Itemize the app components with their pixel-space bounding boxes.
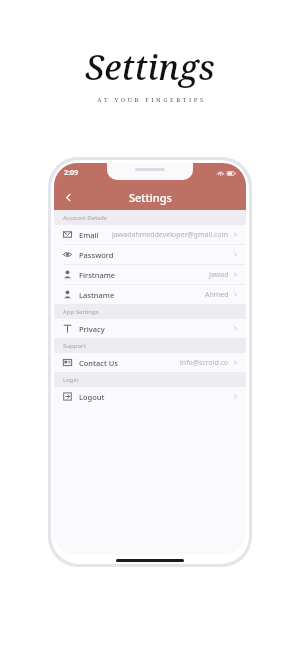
staticText: info@scrold.co <box>180 358 229 368</box>
button[interactable]: Logout <box>54 387 246 406</box>
staticText: jawadahmeddeveloper@gmail.com <box>112 230 229 240</box>
staticText: Firstname <box>79 270 116 280</box>
staticText: A T Y O U R F I N G E R T I P S <box>97 96 204 104</box>
staticText: Account Details <box>63 214 107 222</box>
staticText: Jawad <box>209 270 229 280</box>
staticText: App Settings <box>63 308 99 316</box>
staticText: Settings <box>129 190 172 205</box>
button[interactable]: Back <box>54 184 82 210</box>
button[interactable]: Privacy <box>54 319 246 338</box>
staticText: Ahmed <box>205 290 229 300</box>
button[interactable]: Email <box>54 225 246 244</box>
button[interactable]: Firstname <box>54 265 246 284</box>
staticText: Privacy <box>79 324 105 334</box>
staticText: Support <box>63 342 86 350</box>
staticText: Email <box>79 230 99 240</box>
staticText: Login <box>63 376 79 384</box>
staticText: Password <box>79 250 114 260</box>
staticText: Contact Us <box>79 358 118 368</box>
button[interactable]: Password <box>54 245 246 264</box>
staticText: Logout <box>79 392 105 402</box>
button[interactable]: Contact Us <box>54 353 246 372</box>
staticText: Settings <box>85 44 215 90</box>
staticText: 2:09 <box>64 168 78 178</box>
staticText: Lastname <box>79 290 115 300</box>
button[interactable]: Lastname <box>54 285 246 304</box>
